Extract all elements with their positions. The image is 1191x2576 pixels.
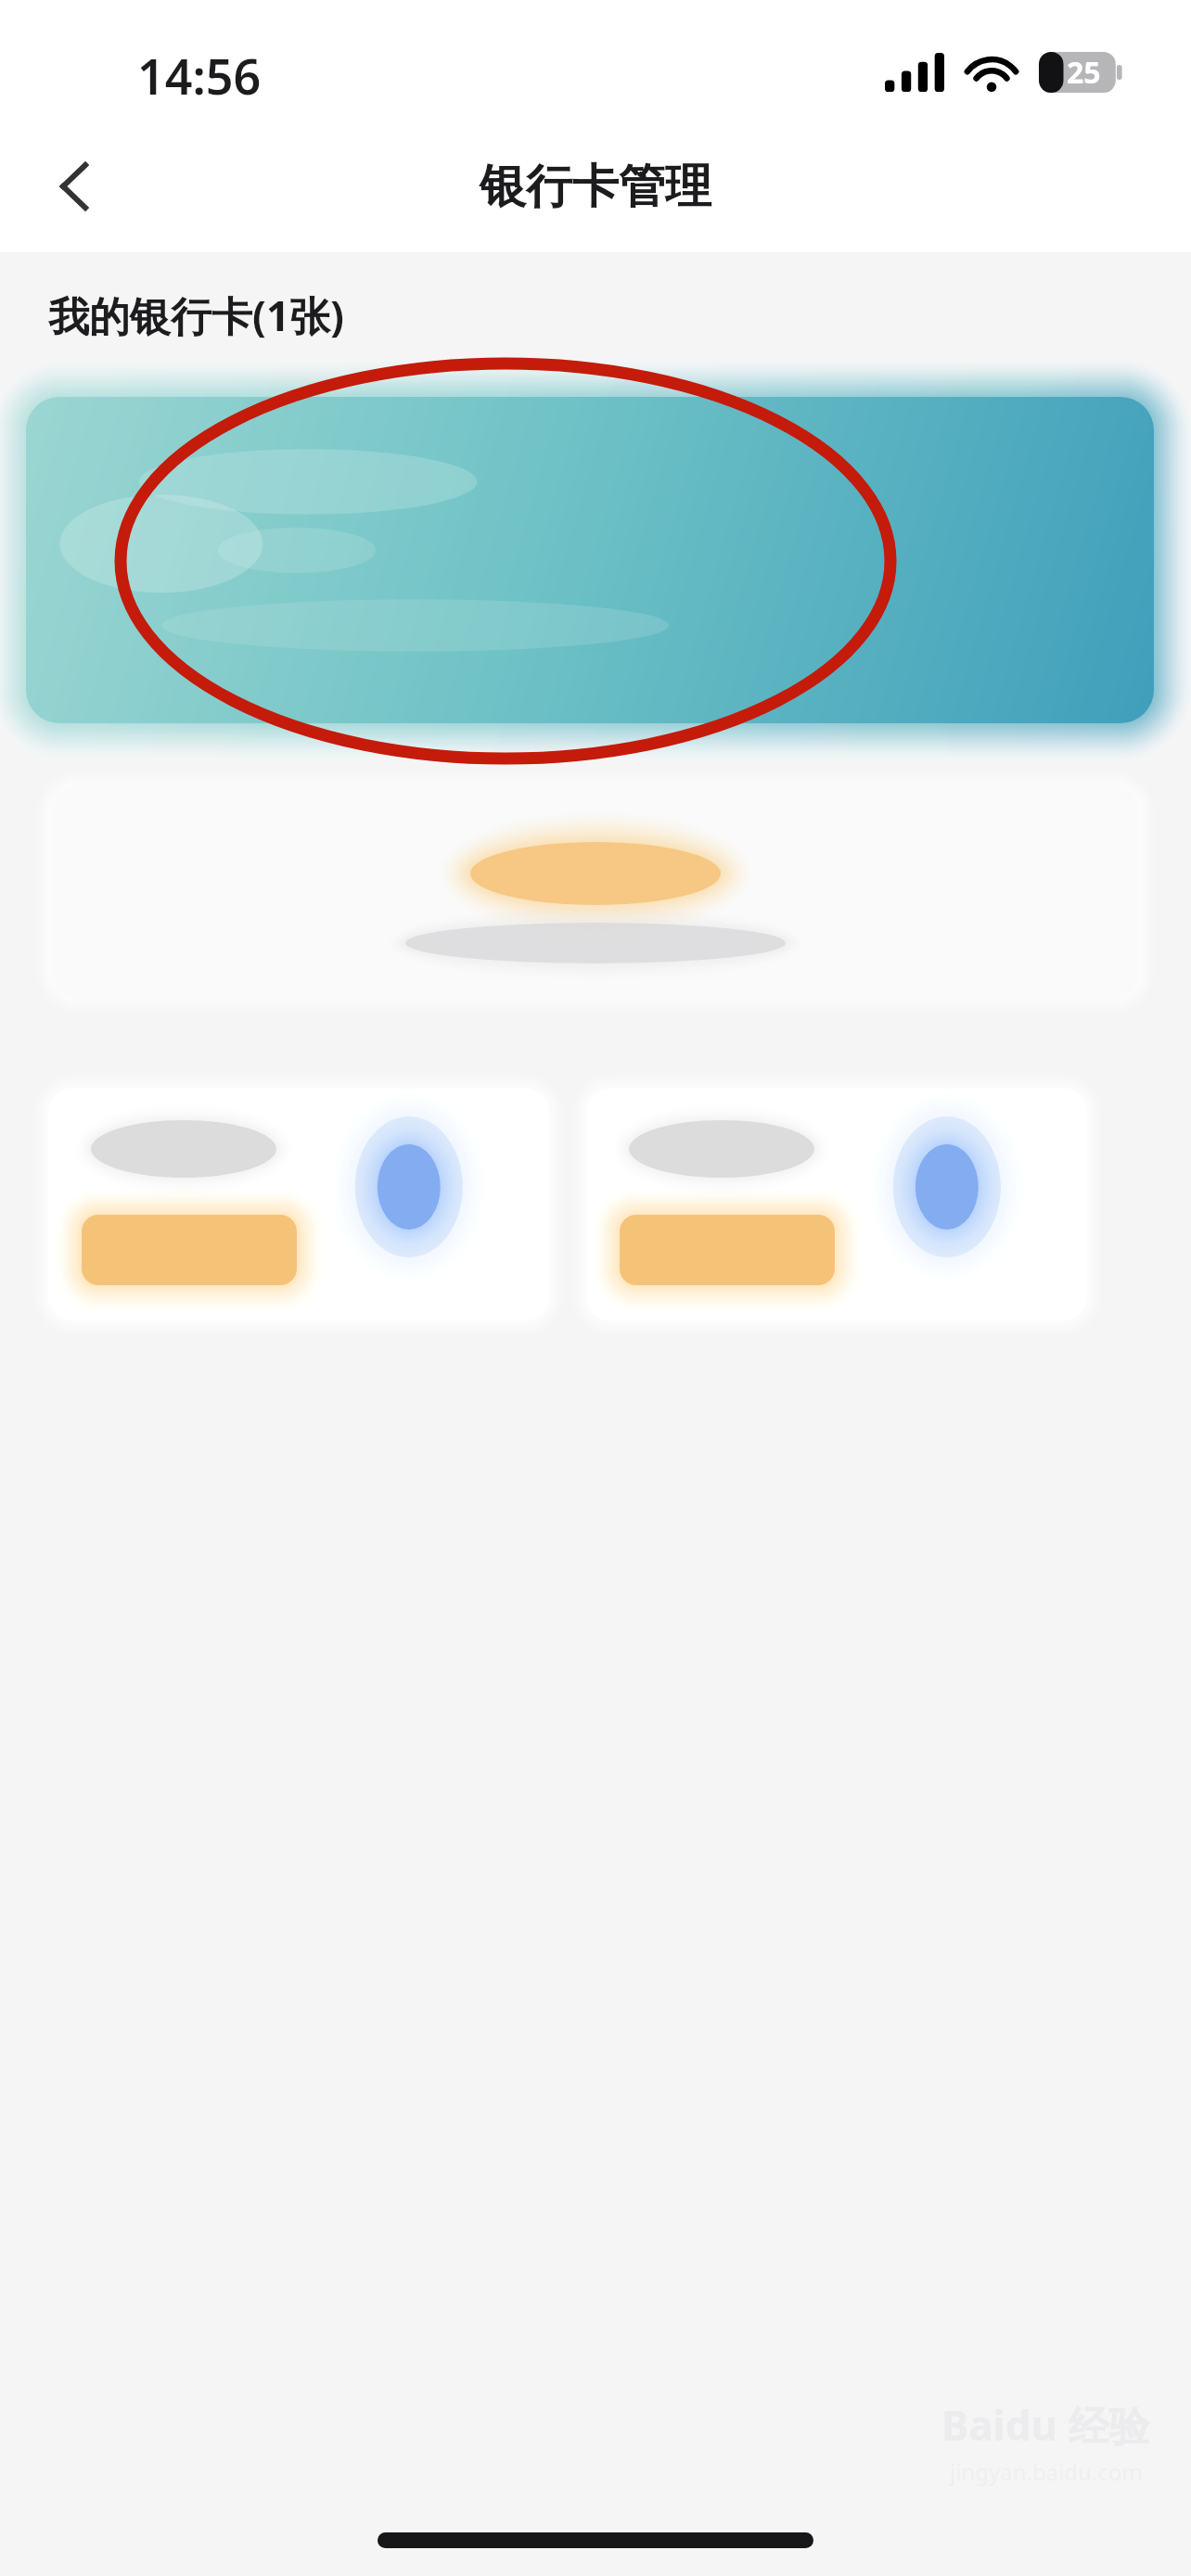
- staticText: 银行卡管理: [480, 158, 711, 216]
- button[interactable]: [0, 781, 1191, 1013]
- button[interactable]: 返回: [32, 144, 117, 229]
- staticText: 25: [1067, 52, 1101, 93]
- button[interactable]: [586, 1079, 1087, 1348]
- staticText: 我的银行卡(1张): [48, 287, 344, 343]
- button[interactable]: [0, 380, 1191, 744]
- button[interactable]: [48, 1079, 549, 1348]
- staticText: 14:56: [137, 43, 262, 108]
- staticText: Baidu 经验: [941, 2397, 1150, 2453]
